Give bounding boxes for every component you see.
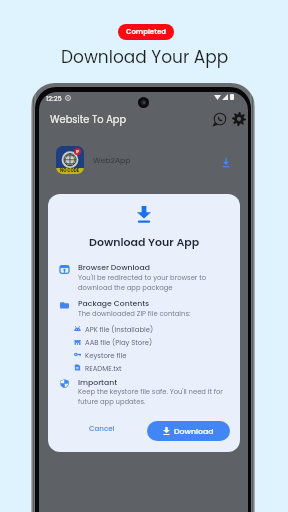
staticText: Download Your App: [89, 234, 200, 249]
staticText: Important: [78, 377, 118, 388]
other: Download app: [221, 157, 231, 167]
staticText: NO CODE: [60, 168, 80, 174]
staticText: Package Contents: [78, 298, 150, 309]
button[interactable]: Settings: [231, 111, 247, 127]
button[interactable]: Cancel: [83, 418, 121, 440]
button[interactable]: WhatsApp: [212, 111, 228, 127]
staticText: README.txt: [85, 364, 122, 374]
staticText: Completed: [126, 27, 166, 37]
staticText: Web2App: [93, 155, 131, 166]
staticText: The downloaded ZIP file contains:: [78, 309, 191, 319]
staticText: Website To App: [50, 113, 127, 127]
staticText: APK file (installable): [85, 325, 154, 335]
button[interactable]: Download: [147, 421, 230, 441]
button[interactable]: NO CODE: [39, 136, 248, 178]
button[interactable]: Completed: [118, 24, 174, 40]
staticText: Download Your App: [61, 45, 229, 69]
staticText: 12:25: [46, 94, 62, 103]
staticText: You'll be redirected to your browser to …: [78, 273, 230, 292]
staticText: Download: [174, 426, 214, 437]
staticText: Browser Download: [78, 262, 150, 273]
staticText: AAB file (Play Store): [85, 338, 153, 348]
staticText: Keep the keystore file safe. You'll need…: [78, 387, 236, 406]
staticText: Keystore file: [85, 351, 127, 361]
staticText: Cancel: [89, 424, 115, 434]
